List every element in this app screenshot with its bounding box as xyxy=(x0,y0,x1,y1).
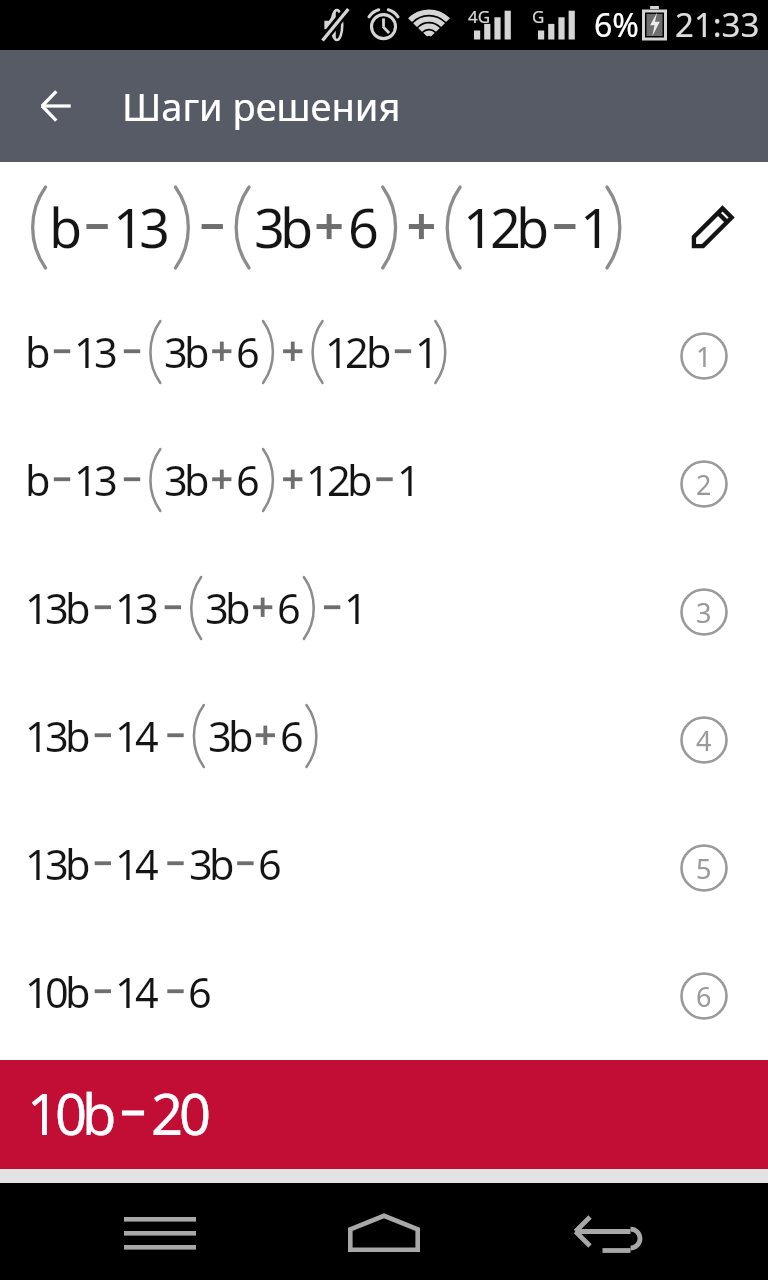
staticText: 1 xyxy=(397,452,421,509)
staticText: 6 xyxy=(236,324,260,381)
staticText: 2 xyxy=(151,1075,184,1151)
staticText: 3 xyxy=(208,708,232,765)
staticText: b xyxy=(366,324,392,381)
staticText: 21:33 xyxy=(675,2,760,47)
button[interactable]: 1 xyxy=(0,1060,768,1169)
staticText: 1 xyxy=(27,1075,60,1151)
button[interactable]: Back xyxy=(0,50,112,162)
staticText: 3 xyxy=(205,580,229,637)
staticText: 6 xyxy=(258,836,282,893)
staticText: 3 xyxy=(254,190,285,264)
staticText: b xyxy=(49,190,83,264)
staticText: 1 xyxy=(115,836,139,893)
staticText: b xyxy=(65,836,91,893)
staticText: 6 xyxy=(696,978,712,1015)
staticText: G xyxy=(532,5,545,28)
staticText: 6 xyxy=(280,708,304,765)
button[interactable]: Recent apps xyxy=(0,1183,256,1280)
staticText: 3 xyxy=(189,836,213,893)
button[interactable]: b xyxy=(0,420,768,548)
staticText: 6 xyxy=(188,964,212,1021)
button[interactable]: Edit xyxy=(658,162,768,292)
staticText: 4 xyxy=(696,722,712,759)
staticText: 0 xyxy=(179,1075,212,1151)
staticText: 3 xyxy=(94,452,118,509)
staticText: b xyxy=(228,708,254,765)
button[interactable]: 1 xyxy=(0,548,768,676)
staticText: Шаги решения xyxy=(122,80,401,132)
staticText: b xyxy=(65,964,91,1021)
staticText: 6 xyxy=(348,190,379,264)
staticText: b xyxy=(280,190,314,264)
staticText: 3 xyxy=(164,452,188,509)
staticText: 1 xyxy=(415,324,439,381)
staticText: 3 xyxy=(94,324,118,381)
staticText: 2 xyxy=(696,466,712,503)
staticText: 1 xyxy=(74,452,98,509)
button[interactable]: b xyxy=(0,292,768,420)
staticText: 1 xyxy=(306,452,330,509)
staticText: 2 xyxy=(345,324,369,381)
staticText: 0 xyxy=(55,1075,88,1151)
staticText: 1 xyxy=(113,190,144,264)
staticText: b xyxy=(25,324,51,381)
staticText: 1 xyxy=(696,338,712,375)
staticText: 1 xyxy=(74,324,98,381)
staticText: 1 xyxy=(25,964,49,1021)
button[interactable]: b xyxy=(0,162,768,292)
staticText: b xyxy=(347,452,373,509)
staticText: 5 xyxy=(696,850,712,887)
staticText: 4 xyxy=(135,836,159,893)
staticText: b xyxy=(25,452,51,509)
staticText: 1 xyxy=(115,580,139,637)
button[interactable]: Back xyxy=(512,1183,768,1280)
staticText: 1 xyxy=(115,708,139,765)
staticText: 2 xyxy=(327,452,351,509)
staticText: 3 xyxy=(164,324,188,381)
staticText: b xyxy=(225,580,251,637)
staticText: 2 xyxy=(490,190,521,264)
staticText: 6 xyxy=(277,580,301,637)
staticText: b xyxy=(65,580,91,637)
staticText: 1 xyxy=(115,964,139,1021)
staticText: 3 xyxy=(696,594,712,631)
staticText: 6 xyxy=(236,452,260,509)
staticText: 1 xyxy=(25,836,49,893)
staticText: b xyxy=(82,1075,117,1151)
button[interactable]: 1 xyxy=(0,932,768,1060)
staticText: 3 xyxy=(135,580,159,637)
staticText: b xyxy=(65,708,91,765)
staticText: b xyxy=(184,324,210,381)
staticText: 4 xyxy=(135,964,159,1021)
staticText: 1 xyxy=(580,190,611,264)
staticText: 0 xyxy=(45,964,69,1021)
staticText: 1 xyxy=(325,324,349,381)
staticText: 1 xyxy=(25,580,49,637)
staticText: 1 xyxy=(25,708,49,765)
staticText: 3 xyxy=(45,708,69,765)
staticText: b xyxy=(516,190,550,264)
staticText: 4G xyxy=(468,5,491,28)
staticText: 3 xyxy=(45,836,69,893)
button[interactable]: 1 xyxy=(0,676,768,804)
staticText: 1 xyxy=(344,580,368,637)
staticText: 6% xyxy=(594,3,639,47)
staticText: 3 xyxy=(45,580,69,637)
button[interactable]: 1 xyxy=(0,804,768,932)
staticText: b xyxy=(209,836,235,893)
staticText: 3 xyxy=(139,190,170,264)
staticText: 1 xyxy=(463,190,494,264)
staticText: 4 xyxy=(135,708,159,765)
button[interactable]: Home xyxy=(256,1183,512,1280)
staticText: b xyxy=(184,452,210,509)
